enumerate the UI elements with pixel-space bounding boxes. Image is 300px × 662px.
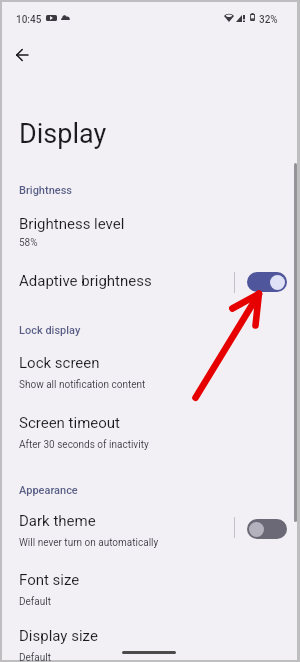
staticText: Will never turn on automatically (19, 537, 159, 549)
staticText: Dark theme (19, 512, 96, 530)
staticText: 10:45 (16, 14, 42, 26)
button[interactable]: Navigate up (6, 39, 38, 71)
staticText: Display size (19, 627, 98, 645)
staticText: Font size (19, 571, 80, 589)
staticText: Lock screen (19, 354, 100, 372)
staticText: Default (19, 596, 51, 608)
button[interactable]: Turn on (247, 519, 287, 539)
staticText: Lock display (19, 324, 81, 337)
staticText: 32% (259, 14, 278, 26)
button[interactable]: Turn off (247, 272, 287, 292)
staticText: Brightness (19, 184, 72, 197)
button[interactable]: Brightness (14, 177, 297, 201)
staticText: Screen timeout (19, 414, 121, 432)
button[interactable]: Appearance (14, 477, 297, 501)
staticText: After 30 seconds of inactivity (19, 439, 149, 451)
staticText: Adaptive brightness (19, 272, 152, 290)
staticText: Appearance (19, 484, 78, 497)
button[interactable]: Lock display (14, 317, 297, 341)
staticText: Show all notification content (19, 379, 146, 391)
staticText: Brightness level (19, 215, 125, 233)
staticText: Default (19, 652, 51, 662)
staticText: 58% (19, 237, 38, 249)
staticText: Display (19, 118, 107, 150)
